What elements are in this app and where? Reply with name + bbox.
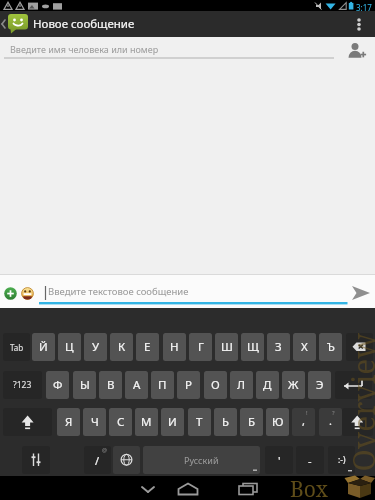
button[interactable] [3, 408, 52, 436]
button[interactable]: / [84, 446, 111, 474]
button[interactable] [133, 476, 163, 500]
button[interactable]: Новое сообщение [33, 11, 233, 37]
staticText: Л [237, 377, 246, 393]
button[interactable]: ?123 [3, 371, 42, 399]
button[interactable]: - [296, 446, 324, 474]
button[interactable]: Ш [215, 333, 238, 361]
button[interactable]: Ж [282, 371, 305, 399]
button[interactable]: Г [189, 333, 212, 361]
button[interactable]: Я [57, 408, 80, 436]
staticText: А [133, 377, 141, 393]
staticText: О [211, 377, 220, 393]
staticText: Введите имя человека или номер [10, 43, 159, 55]
button[interactable]: Щ [241, 333, 264, 361]
staticText: Ъ [327, 339, 335, 355]
staticText: Ф [53, 377, 63, 393]
button[interactable] [113, 446, 140, 474]
button[interactable]: К [110, 333, 133, 361]
staticText: Н [170, 339, 179, 355]
staticText: @ [102, 446, 107, 453]
button[interactable] [173, 476, 203, 500]
staticText: Ч [91, 414, 99, 430]
button[interactable]: Русский [143, 446, 260, 474]
button[interactable] [22, 446, 50, 474]
staticText: Т [196, 414, 203, 430]
button[interactable]: Введите имя человека или номер [0, 37, 340, 61]
button[interactable]: З [267, 333, 290, 361]
staticText: Щ [247, 339, 259, 355]
staticText: Й [39, 339, 48, 355]
staticText: М [141, 414, 152, 430]
staticText: Русский [184, 454, 219, 466]
button[interactable]: А [125, 371, 148, 399]
button[interactable] [335, 371, 372, 399]
staticText: Новое сообщение [33, 16, 135, 32]
button[interactable]: Tab [3, 333, 30, 361]
staticText: Я [65, 414, 73, 430]
button[interactable]: Ч [83, 408, 106, 436]
staticText: Введите текстовое сообщение [48, 285, 189, 298]
staticText: Г [198, 339, 204, 355]
button[interactable]: Ъ [319, 333, 342, 361]
button[interactable]: Ы [73, 371, 96, 399]
button[interactable]: М [135, 408, 158, 436]
button[interactable]: Е [136, 333, 159, 361]
staticText: Е [144, 339, 151, 355]
button[interactable] [340, 37, 375, 62]
button[interactable]: Х [293, 333, 316, 361]
staticText: З [275, 339, 282, 355]
button[interactable]: Ф [46, 371, 69, 399]
staticText: . [329, 413, 332, 428]
staticText: - [308, 453, 312, 468]
staticText: Box [290, 475, 328, 500]
staticText: Ж [288, 377, 299, 393]
staticText: С [117, 414, 125, 430]
staticText: У [92, 339, 100, 355]
button[interactable] [0, 11, 33, 37]
button[interactable]: Л [230, 371, 253, 399]
staticText: Э [316, 377, 324, 393]
button[interactable] [345, 278, 375, 305]
staticText: ' [278, 453, 281, 468]
staticText: 3:17 [356, 2, 372, 13]
staticText: , [302, 413, 305, 428]
button[interactable] [21, 284, 35, 303]
button[interactable]: Й [32, 333, 55, 361]
button[interactable] [346, 333, 373, 361]
staticText: / [95, 453, 100, 468]
button[interactable]: В [99, 371, 122, 399]
button[interactable]: У [84, 333, 107, 361]
staticText: Tab [10, 342, 24, 353]
button[interactable]: Н [163, 333, 186, 361]
button[interactable] [342, 408, 373, 436]
button[interactable]: Ц [58, 333, 81, 361]
button[interactable]: , [292, 408, 315, 436]
staticText: Б [248, 414, 256, 430]
button[interactable]: О [204, 371, 227, 399]
button[interactable]: Ь [214, 408, 237, 436]
staticText: К [118, 339, 126, 355]
button[interactable]: Э [308, 371, 331, 399]
button[interactable]: Ю [266, 408, 289, 436]
staticText: Р [185, 377, 192, 393]
button[interactable] [350, 11, 375, 37]
staticText: ! [306, 409, 308, 417]
button[interactable]: П [151, 371, 174, 399]
staticText: И [168, 414, 177, 430]
button[interactable]: :-) [328, 446, 355, 474]
button[interactable]: Б [240, 408, 263, 436]
button[interactable]: Д [256, 371, 279, 399]
button[interactable]: Р [177, 371, 200, 399]
button[interactable]: . [319, 408, 342, 436]
button[interactable]: Введите текстовое сообщение [38, 276, 340, 306]
button[interactable]: С [109, 408, 132, 436]
staticText: Х [301, 339, 308, 355]
staticText: П [158, 377, 167, 393]
button[interactable]: Т [188, 408, 211, 436]
button[interactable] [2, 284, 20, 303]
button[interactable]: ' [265, 446, 293, 474]
button[interactable] [235, 476, 265, 500]
button[interactable]: И [161, 408, 184, 436]
staticText: Ь [222, 414, 229, 430]
staticText: ?123 [13, 379, 32, 391]
